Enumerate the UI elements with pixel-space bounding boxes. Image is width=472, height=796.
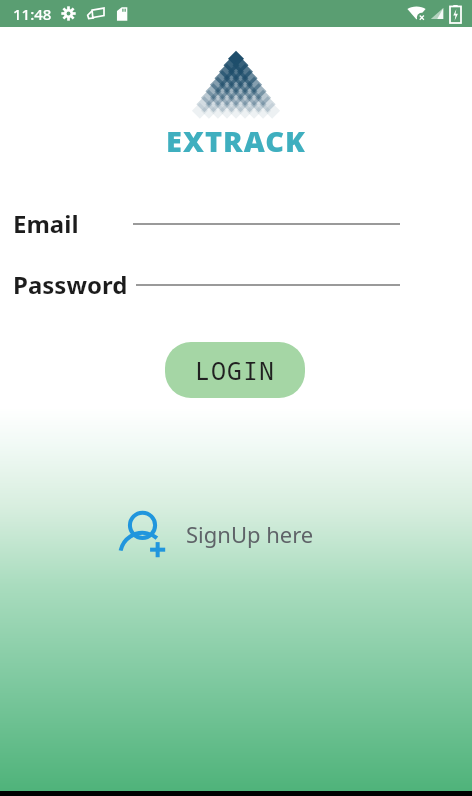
staticText: Email [13, 207, 79, 240]
staticText: Password [13, 268, 128, 301]
staticText: 11:48 [13, 4, 52, 24]
button[interactable]: LOGIN [165, 342, 305, 398]
staticText: LOGIN [195, 353, 276, 387]
button[interactable]: Sign up [112, 500, 322, 568]
staticText: SignUp here [186, 519, 314, 549]
staticText: EXTRACK [166, 121, 306, 160]
other: Sign up [112, 506, 168, 562]
